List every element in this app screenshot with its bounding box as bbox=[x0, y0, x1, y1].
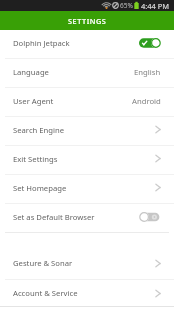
staticText: Account & Service bbox=[13, 288, 78, 298]
staticText: Language bbox=[13, 67, 49, 77]
other: Dolphin Jetpack on bbox=[139, 37, 161, 49]
button[interactable]: Account & Service bbox=[0, 278, 174, 308]
button[interactable]: Set Homepage bbox=[0, 173, 174, 202]
button[interactable]: Language bbox=[0, 57, 174, 86]
button[interactable]: Set as Default Browser bbox=[0, 202, 174, 231]
button[interactable]: Gesture & Sonar bbox=[0, 248, 174, 278]
staticText: 65% bbox=[120, 1, 133, 10]
staticText: SETTINGS bbox=[68, 16, 107, 26]
staticText: Android bbox=[132, 96, 161, 106]
button[interactable]: Dolphin Jetpack bbox=[0, 28, 174, 57]
button[interactable]: Search Engine bbox=[0, 115, 174, 144]
staticText: Search Engine bbox=[13, 125, 65, 135]
staticText: User Agent bbox=[13, 96, 54, 106]
staticText: Dolphin Jetpack bbox=[13, 38, 70, 48]
other: Set as Default Browser off bbox=[139, 211, 161, 223]
staticText: Exit Settings bbox=[13, 154, 58, 164]
staticText: 4:44 PM bbox=[141, 1, 170, 11]
button[interactable]: User Agent bbox=[0, 86, 174, 115]
staticText: Set Homepage bbox=[13, 183, 67, 193]
staticText: Gesture & Sonar bbox=[13, 258, 73, 268]
staticText: English bbox=[134, 67, 161, 77]
button[interactable]: Exit Settings bbox=[0, 144, 174, 173]
staticText: Set as Default Browser bbox=[13, 212, 95, 222]
